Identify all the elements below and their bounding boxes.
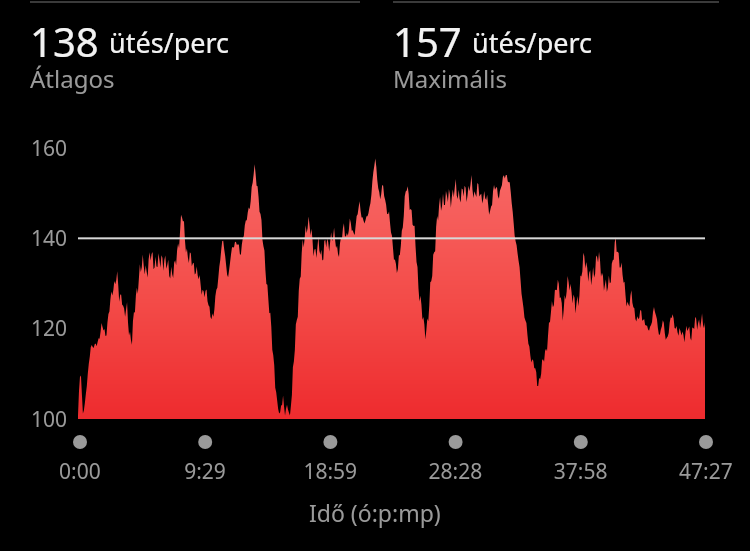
button[interactable]: Heart rate chart [0, 0, 750, 551]
